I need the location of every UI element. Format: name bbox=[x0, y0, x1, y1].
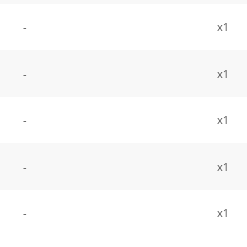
button[interactable]: - bbox=[0, 50, 247, 97]
staticText: x1 bbox=[217, 112, 230, 127]
button[interactable]: - bbox=[0, 143, 247, 190]
staticText: x1 bbox=[217, 159, 230, 174]
staticText: x1 bbox=[217, 66, 230, 81]
staticText: - bbox=[23, 19, 27, 34]
button[interactable]: - bbox=[0, 190, 247, 236]
staticText: x1 bbox=[217, 205, 230, 220]
staticText: - bbox=[23, 66, 27, 81]
staticText: x1 bbox=[217, 19, 230, 34]
button[interactable]: - bbox=[0, 97, 247, 143]
staticText: - bbox=[23, 205, 27, 220]
button[interactable]: - bbox=[0, 4, 247, 50]
staticText: - bbox=[23, 159, 27, 174]
staticText: - bbox=[23, 112, 27, 127]
